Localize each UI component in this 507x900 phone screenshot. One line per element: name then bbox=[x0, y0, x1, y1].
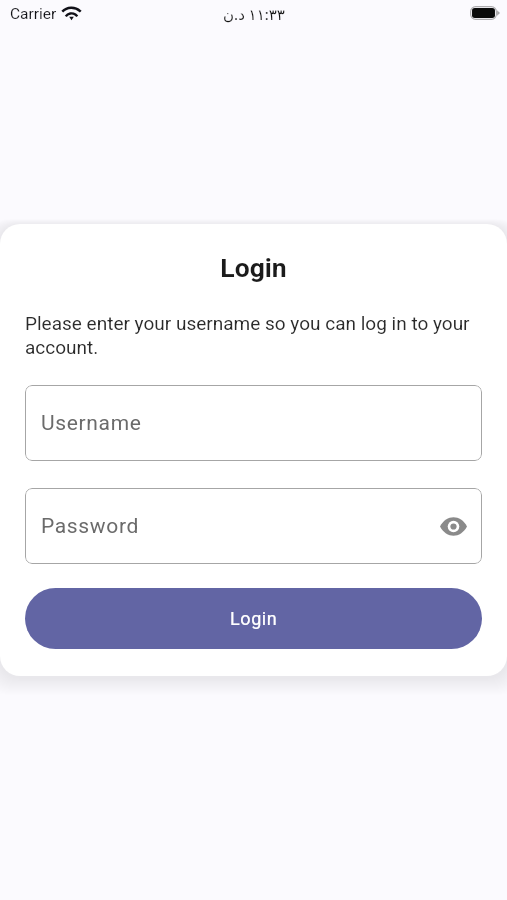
staticText: ١١:٣٣ د.ن bbox=[223, 6, 285, 24]
button[interactable]: Username bbox=[25, 385, 482, 461]
staticText: Login bbox=[0, 252, 507, 283]
button[interactable]: Password bbox=[25, 488, 482, 564]
staticText: Password bbox=[41, 514, 139, 539]
button[interactable]: Show password bbox=[438, 511, 468, 541]
staticText: Login bbox=[230, 608, 278, 629]
staticText: Carrier bbox=[10, 5, 57, 23]
staticText: Please enter your username so you can lo… bbox=[25, 312, 485, 359]
staticText: Username bbox=[41, 411, 142, 436]
button[interactable]: Login bbox=[25, 588, 482, 649]
